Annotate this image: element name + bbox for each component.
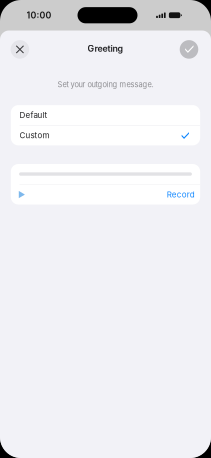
staticText: Default [19,110,47,120]
button[interactable]: Custom [11,125,200,145]
button[interactable]: Record [167,185,195,204]
staticText: 10:00 [26,10,51,20]
button[interactable]: Default [11,105,200,125]
staticText: Set your outgoing message. [57,80,153,89]
staticText: Greeting [87,43,123,54]
button[interactable]: Play [14,185,30,204]
staticText: Custom [19,131,49,140]
button[interactable]: Done [175,34,203,64]
button[interactable]: Close [6,34,34,64]
staticText: Record [167,190,195,199]
